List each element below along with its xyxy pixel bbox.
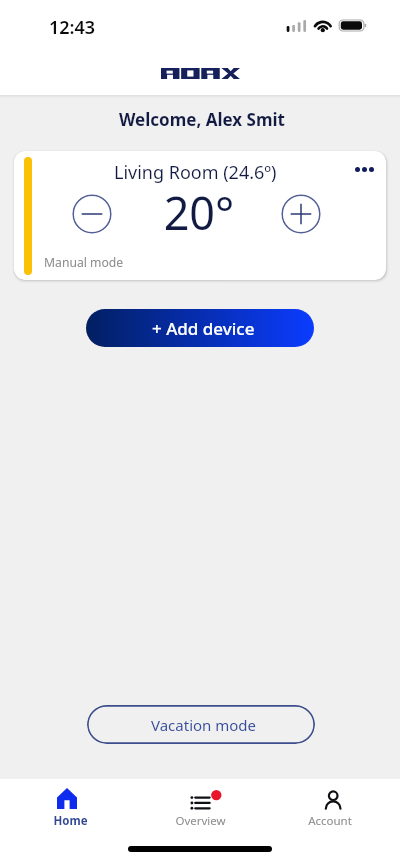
staticText: Welcome, Alex Smit (119, 108, 285, 131)
button[interactable]: Increase temperature (281, 194, 321, 234)
button[interactable]: Decrease temperature (72, 194, 112, 234)
staticText: + Add device (152, 317, 255, 340)
button[interactable]: More options (355, 167, 374, 172)
staticText: Manual mode (44, 254, 124, 271)
staticText: Overview (175, 813, 226, 829)
button[interactable]: Overview (140, 779, 260, 835)
staticText: 20° (149, 182, 249, 243)
button[interactable]: Vacation mode (87, 705, 315, 744)
staticText: Home (53, 813, 88, 829)
other: ADAX (161, 68, 240, 79)
button[interactable]: Account (270, 779, 390, 835)
button[interactable]: + Add device (86, 309, 314, 347)
button[interactable]: Living Room (24.6º) (14, 151, 386, 280)
staticText: Vacation mode (151, 715, 257, 735)
button[interactable]: Home (10, 779, 130, 835)
staticText: Account (308, 813, 352, 829)
staticText: 12:43 (49, 15, 96, 40)
staticText: Living Room (24.6º) (114, 160, 277, 185)
